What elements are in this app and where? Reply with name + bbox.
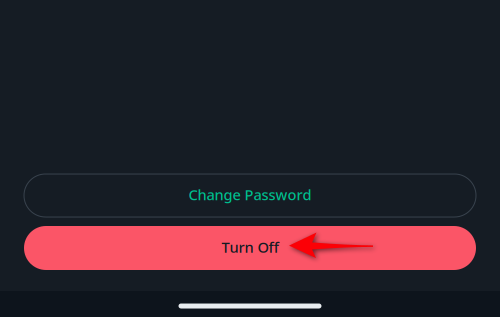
staticText: Turn Off <box>221 237 278 257</box>
button[interactable]: Change Password <box>24 174 476 217</box>
button[interactable]: Turn Off <box>24 226 476 270</box>
staticText: Change Password <box>188 185 311 204</box>
